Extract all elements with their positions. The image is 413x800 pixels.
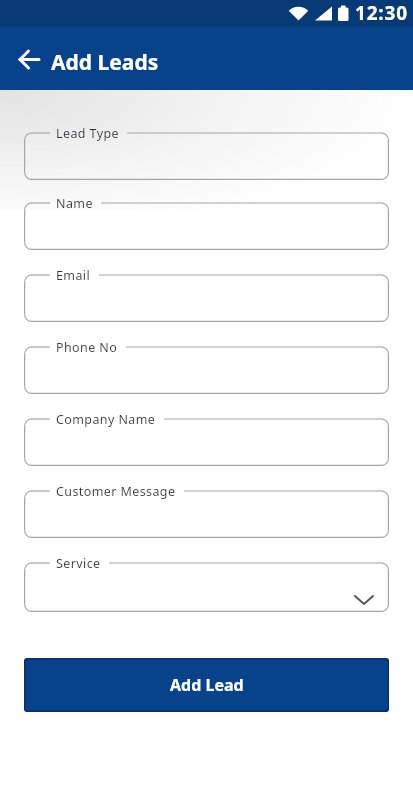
- button[interactable]: Phone No: [24, 340, 389, 394]
- button[interactable]: Name: [24, 196, 389, 250]
- staticText: 12:30: [355, 0, 408, 26]
- staticText: Add Lead: [170, 674, 244, 696]
- staticText: Lead Type: [56, 125, 119, 142]
- staticText: Company Name: [56, 411, 156, 428]
- staticText: Phone No: [56, 339, 118, 356]
- button[interactable]: Add Lead: [24, 658, 389, 712]
- staticText: Customer Message: [56, 483, 176, 500]
- staticText: Name: [56, 195, 93, 212]
- button[interactable]: Customer Message: [24, 484, 389, 538]
- button[interactable]: [9, 39, 49, 79]
- button[interactable]: Email: [24, 268, 389, 322]
- staticText: Add Leads: [51, 48, 159, 77]
- button[interactable]: Lead Type: [24, 126, 389, 180]
- button[interactable]: Service: [24, 556, 389, 612]
- staticText: Email: [56, 267, 91, 284]
- button[interactable]: Company Name: [24, 412, 389, 466]
- staticText: Service: [56, 555, 101, 572]
